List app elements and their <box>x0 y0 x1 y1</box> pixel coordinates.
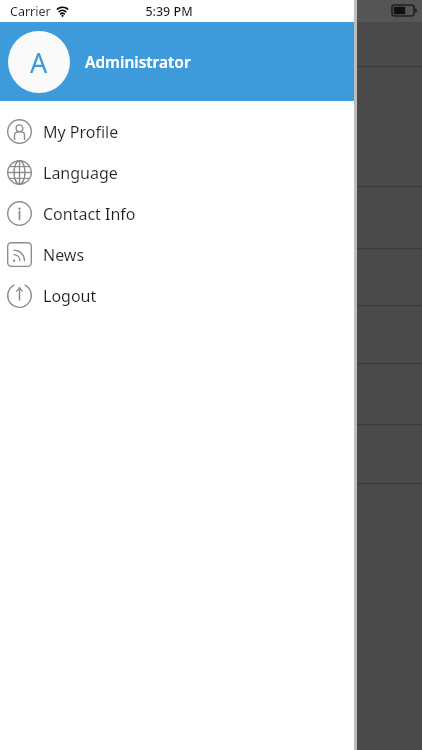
button[interactable]: Logout <box>0 275 354 316</box>
staticText: My Profile <box>43 121 119 143</box>
button[interactable]: News <box>0 234 354 275</box>
staticText: Contact Info <box>43 203 136 225</box>
other: News <box>7 242 32 267</box>
staticText: Language <box>43 162 118 184</box>
other: Contact Info <box>7 201 32 226</box>
other: My Profile <box>7 119 32 144</box>
staticText: News <box>43 244 85 266</box>
other: Language <box>7 160 32 185</box>
button[interactable]: A <box>0 22 354 101</box>
staticText: A <box>30 44 48 81</box>
other: Logout <box>7 283 32 308</box>
button[interactable]: My Profile <box>0 111 354 152</box>
button[interactable]: Language <box>0 152 354 193</box>
staticText: Logout <box>43 285 97 307</box>
staticText: Carrier <box>10 3 51 20</box>
button[interactable]: Contact Info <box>0 193 354 234</box>
staticText: 5:39 PM <box>145 3 193 20</box>
staticText: Administrator <box>85 51 191 72</box>
